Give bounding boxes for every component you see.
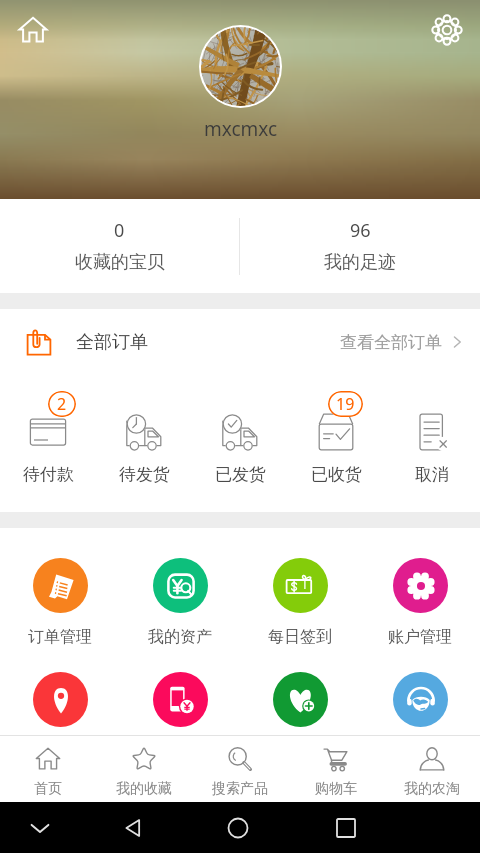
button[interactable]: 96 [240, 199, 480, 293]
button[interactable]: 每日签到 [240, 558, 360, 647]
button[interactable]: 待发货 [96, 375, 192, 512]
button[interactable]: Settings [425, 8, 469, 52]
staticText: 已发货 [215, 464, 266, 485]
button[interactable]: 0 [0, 199, 239, 293]
staticText: 待付款 [23, 464, 74, 485]
staticText: 0 [114, 218, 125, 243]
staticText: 96 [350, 218, 371, 243]
button[interactable]: 购物车 [288, 736, 384, 802]
button[interactable]: 取消 [384, 375, 480, 512]
button[interactable]: Home [11, 8, 55, 52]
staticText: 首页 [34, 780, 62, 798]
button[interactable]: Hide [16, 802, 64, 853]
button[interactable]: Home [214, 802, 262, 853]
staticText: 我的资产 [148, 627, 212, 647]
staticText: 我的农淘 [404, 780, 460, 798]
staticText: 2 [57, 393, 67, 415]
button[interactable]: Recents [322, 802, 370, 853]
staticText: 搜索产品 [212, 780, 268, 798]
button[interactable]: 账户管理 [360, 558, 480, 647]
staticText: 我的足迹 [324, 251, 396, 274]
button[interactable]: 2 [0, 375, 96, 512]
staticText: 取消 [415, 464, 449, 485]
button[interactable] [360, 672, 480, 741]
button[interactable]: 搜索产品 [192, 736, 288, 802]
staticText: 收藏的宝贝 [75, 251, 165, 274]
button[interactable] [201, 27, 280, 106]
staticText: 查看全部订单 [340, 332, 442, 353]
button[interactable]: 我的收藏 [96, 736, 192, 802]
staticText: 我的收藏 [116, 780, 172, 798]
staticText: 19 [336, 393, 355, 415]
staticText: 订单管理 [28, 627, 92, 647]
staticText: mxcmxc [204, 116, 278, 142]
button[interactable]: 我的资产 [120, 558, 240, 647]
staticText: 已收货 [311, 464, 362, 485]
button[interactable]: Back [109, 802, 157, 853]
staticText: 每日签到 [268, 627, 332, 647]
button[interactable]: 全部订单 [0, 309, 480, 375]
button[interactable]: 我的农淘 [384, 736, 480, 802]
button[interactable]: 已发货 [192, 375, 288, 512]
button[interactable] [240, 672, 360, 741]
staticText: 待发货 [119, 464, 170, 485]
button[interactable]: 订单管理 [0, 558, 120, 647]
button[interactable]: 首页 [0, 736, 96, 802]
staticText: 购物车 [315, 780, 357, 798]
button[interactable] [120, 672, 240, 741]
button[interactable]: 19 [288, 375, 384, 512]
staticText: 全部订单 [76, 331, 148, 354]
button[interactable] [0, 672, 120, 741]
staticText: 账户管理 [388, 627, 452, 647]
